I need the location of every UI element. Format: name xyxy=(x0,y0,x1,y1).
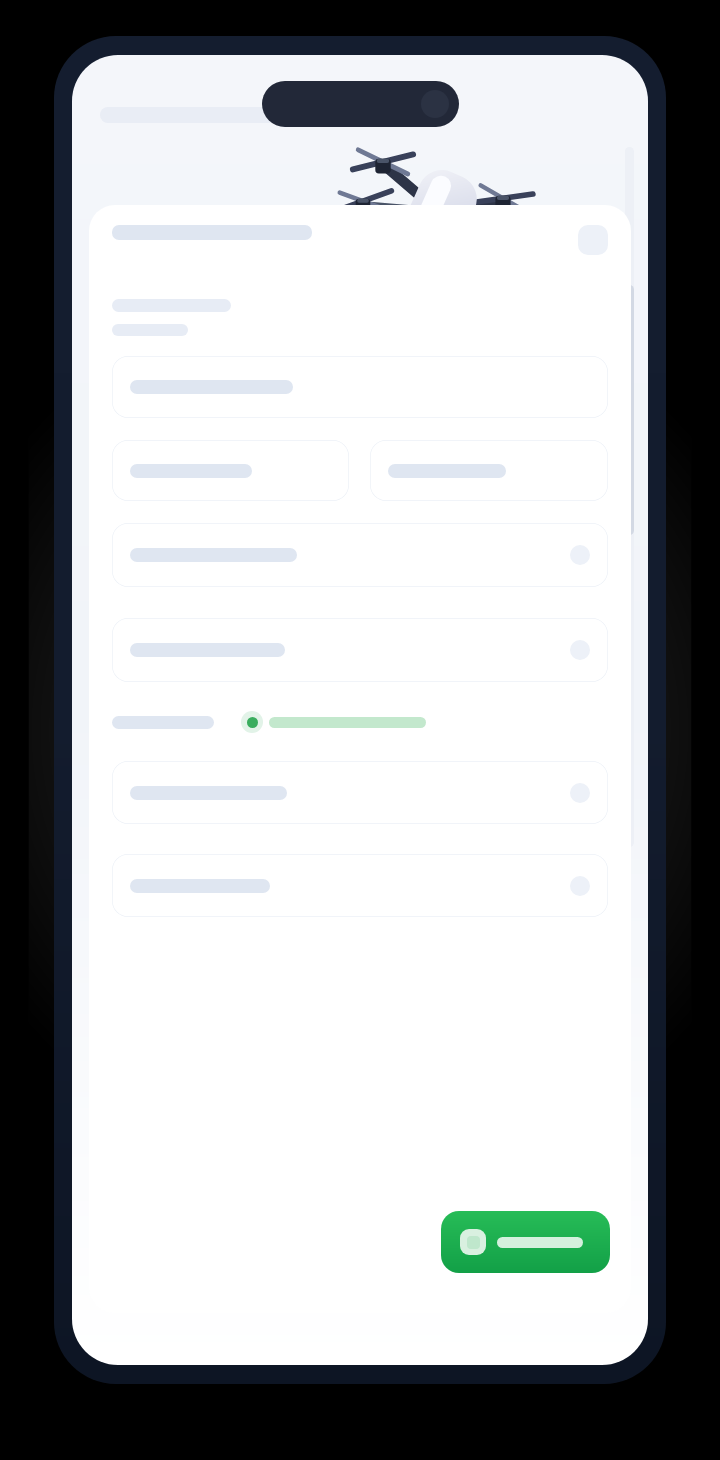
button[interactable] xyxy=(112,710,608,734)
button[interactable] xyxy=(112,523,608,587)
button[interactable] xyxy=(112,761,608,824)
button[interactable]: Profile xyxy=(578,225,608,255)
button[interactable] xyxy=(370,440,608,501)
button[interactable] xyxy=(112,440,349,501)
button[interactable] xyxy=(112,356,608,418)
button[interactable]: Confirm xyxy=(441,1211,610,1273)
button[interactable] xyxy=(112,854,608,917)
button[interactable] xyxy=(112,618,608,682)
